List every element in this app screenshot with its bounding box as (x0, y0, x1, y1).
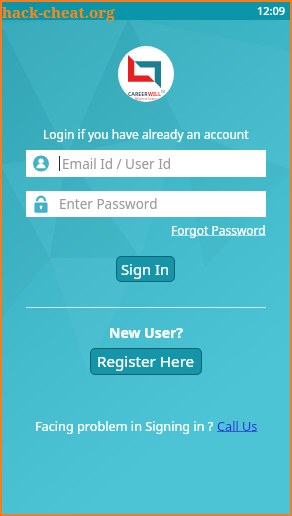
button[interactable]: Call Us (217, 417, 258, 434)
staticText: CAREER (128, 90, 148, 97)
button[interactable]: Sign In (116, 256, 175, 282)
staticText: 12:09 (257, 3, 286, 18)
staticText: Enter Password (59, 195, 158, 213)
button[interactable]: Register Here (90, 348, 202, 375)
staticText: Forgot Password (171, 222, 266, 238)
staticText: Register Here (97, 351, 195, 372)
staticText: New User? (109, 323, 183, 342)
staticText: TM (161, 90, 165, 94)
staticText: Facing problem in Signing in ? (35, 417, 217, 434)
staticText: Sign In (121, 259, 170, 279)
staticText: Login if you have already an account (43, 126, 249, 142)
button[interactable]: Forgot Password (171, 222, 266, 238)
staticText: hack-cheat.org (2, 2, 115, 22)
staticText: Call Us (217, 417, 258, 434)
staticText: Email Id / User Id (62, 155, 172, 173)
staticText: WILL (148, 90, 161, 97)
button[interactable]: Enter Password (26, 191, 266, 217)
button[interactable]: Email Id / User Id (26, 150, 266, 177)
staticText: Begin to Learn (135, 97, 157, 101)
